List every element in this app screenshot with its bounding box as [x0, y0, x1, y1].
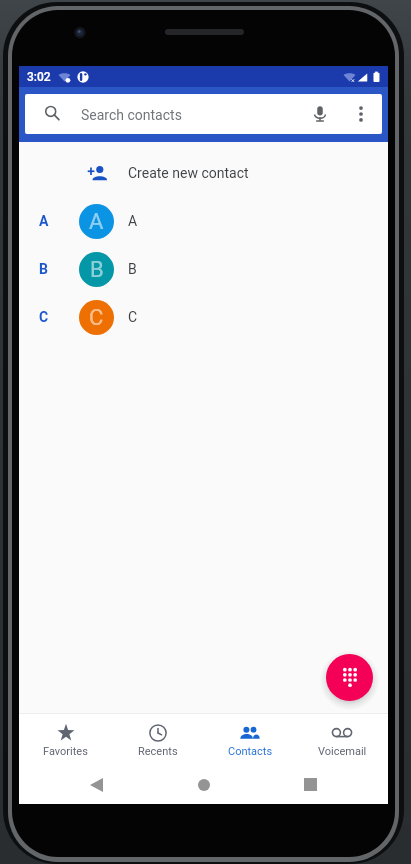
staticText: A: [128, 213, 138, 229]
staticText: Contacts: [228, 745, 273, 758]
button[interactable]: Back: [60, 765, 132, 804]
staticText: Create new contact: [128, 165, 249, 181]
staticText: Recents: [138, 745, 178, 758]
staticText: Voicemail: [318, 745, 367, 758]
staticText: C: [89, 305, 104, 331]
staticText: B: [90, 257, 104, 283]
button[interactable]: Recents: [112, 713, 204, 765]
staticText: C: [128, 309, 138, 325]
button[interactable]: Contacts: [204, 713, 296, 765]
staticText: A: [39, 213, 49, 229]
staticText: 3:02: [27, 70, 51, 84]
button[interactable]: Dialpad: [326, 654, 373, 701]
staticText: B: [128, 261, 137, 277]
button[interactable]: Voicemail: [296, 713, 388, 765]
button[interactable]: Home: [168, 765, 240, 804]
staticText: Favorites: [43, 745, 88, 758]
button[interactable]: Favorites: [19, 713, 112, 765]
staticText: C: [39, 309, 49, 325]
button[interactable]: Search contacts: [25, 94, 382, 134]
button[interactable]: Create new contact: [19, 149, 388, 197]
button[interactable]: B: [19, 245, 388, 293]
button[interactable]: A: [19, 197, 388, 245]
button[interactable]: C: [19, 293, 388, 341]
button[interactable]: More options: [350, 103, 372, 125]
staticText: B: [39, 261, 48, 277]
button[interactable]: Recent apps: [274, 765, 346, 804]
button[interactable]: Voice search: [308, 102, 332, 126]
staticText: A: [89, 209, 104, 235]
staticText: Search contacts: [81, 107, 182, 123]
